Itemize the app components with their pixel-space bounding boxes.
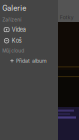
staticText: Galerie [2, 4, 26, 13]
staticText: Můj cloud [2, 48, 24, 54]
staticText: Videa [12, 26, 26, 33]
button[interactable]: Koš [0, 35, 58, 46]
staticText: Přidat album [16, 57, 47, 64]
button[interactable]: Přidat album [0, 55, 58, 66]
staticText: Fotky [60, 14, 74, 20]
staticText: Koš [12, 37, 22, 44]
button[interactable]: Videa [0, 24, 58, 35]
staticText: Zařízení [2, 17, 21, 23]
